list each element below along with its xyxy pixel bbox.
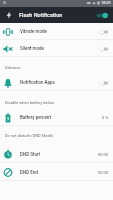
staticText: Disable when battery below (5, 100, 55, 105)
staticText: Battery percent (20, 115, 51, 120)
button[interactable]: Enable flash notification (95, 10, 110, 21)
button[interactable]: DND End (0, 163, 113, 181)
staticText: 00:00 (98, 152, 109, 157)
staticText: Do not disturb (DND Mode) (5, 133, 54, 138)
button[interactable]: Notification Apps (0, 74, 113, 91)
staticText: Vibrate mode (20, 29, 47, 34)
staticText: DND End (20, 170, 38, 175)
staticText: 00:00 (98, 170, 109, 175)
staticText: Notification Apps (20, 80, 55, 85)
button[interactable]: Flash (4, 10, 14, 20)
button[interactable]: Battery percent (0, 109, 113, 126)
button[interactable]: Silent mode (0, 40, 113, 57)
button[interactable]: Vibrate mode (0, 23, 113, 40)
staticText: Flash Notification (19, 12, 63, 18)
staticText: 18:21 (101, 0, 111, 5)
staticText: 0 % (102, 115, 109, 120)
staticText: DND Start (20, 152, 41, 157)
button[interactable]: DND Start (0, 145, 113, 163)
staticText: Advance (5, 65, 21, 70)
staticText: Silent mode (20, 46, 44, 51)
